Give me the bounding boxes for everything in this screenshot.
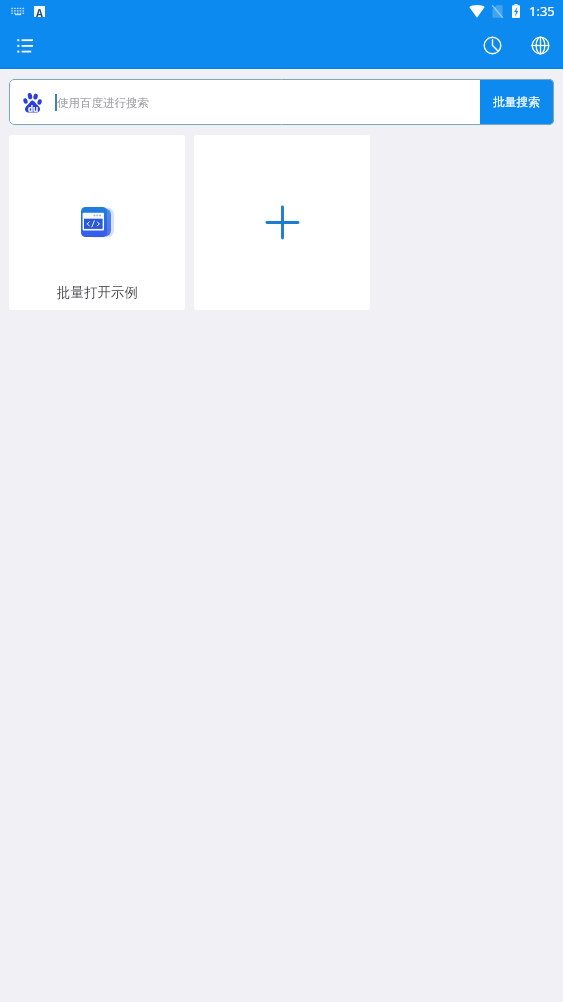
button[interactable]: Menu bbox=[0, 24, 49, 67]
button[interactable]: Add bbox=[194, 135, 370, 310]
staticText: 批量搜索 bbox=[493, 95, 541, 110]
staticText: 1:35 bbox=[529, 2, 555, 20]
staticText: A bbox=[36, 6, 43, 17]
staticText: 使用百度进行搜索 bbox=[57, 96, 149, 110]
button[interactable]: History bbox=[468, 24, 515, 67]
button[interactable]: 使用百度进行搜索 bbox=[55, 79, 480, 125]
staticText: du bbox=[28, 103, 39, 114]
button[interactable]: 批量搜索 bbox=[480, 79, 554, 125]
button[interactable]: Browser bbox=[515, 24, 562, 67]
staticText: 批量打开示例 bbox=[57, 284, 138, 301]
button[interactable]: 批量打开示例 bbox=[9, 135, 185, 310]
